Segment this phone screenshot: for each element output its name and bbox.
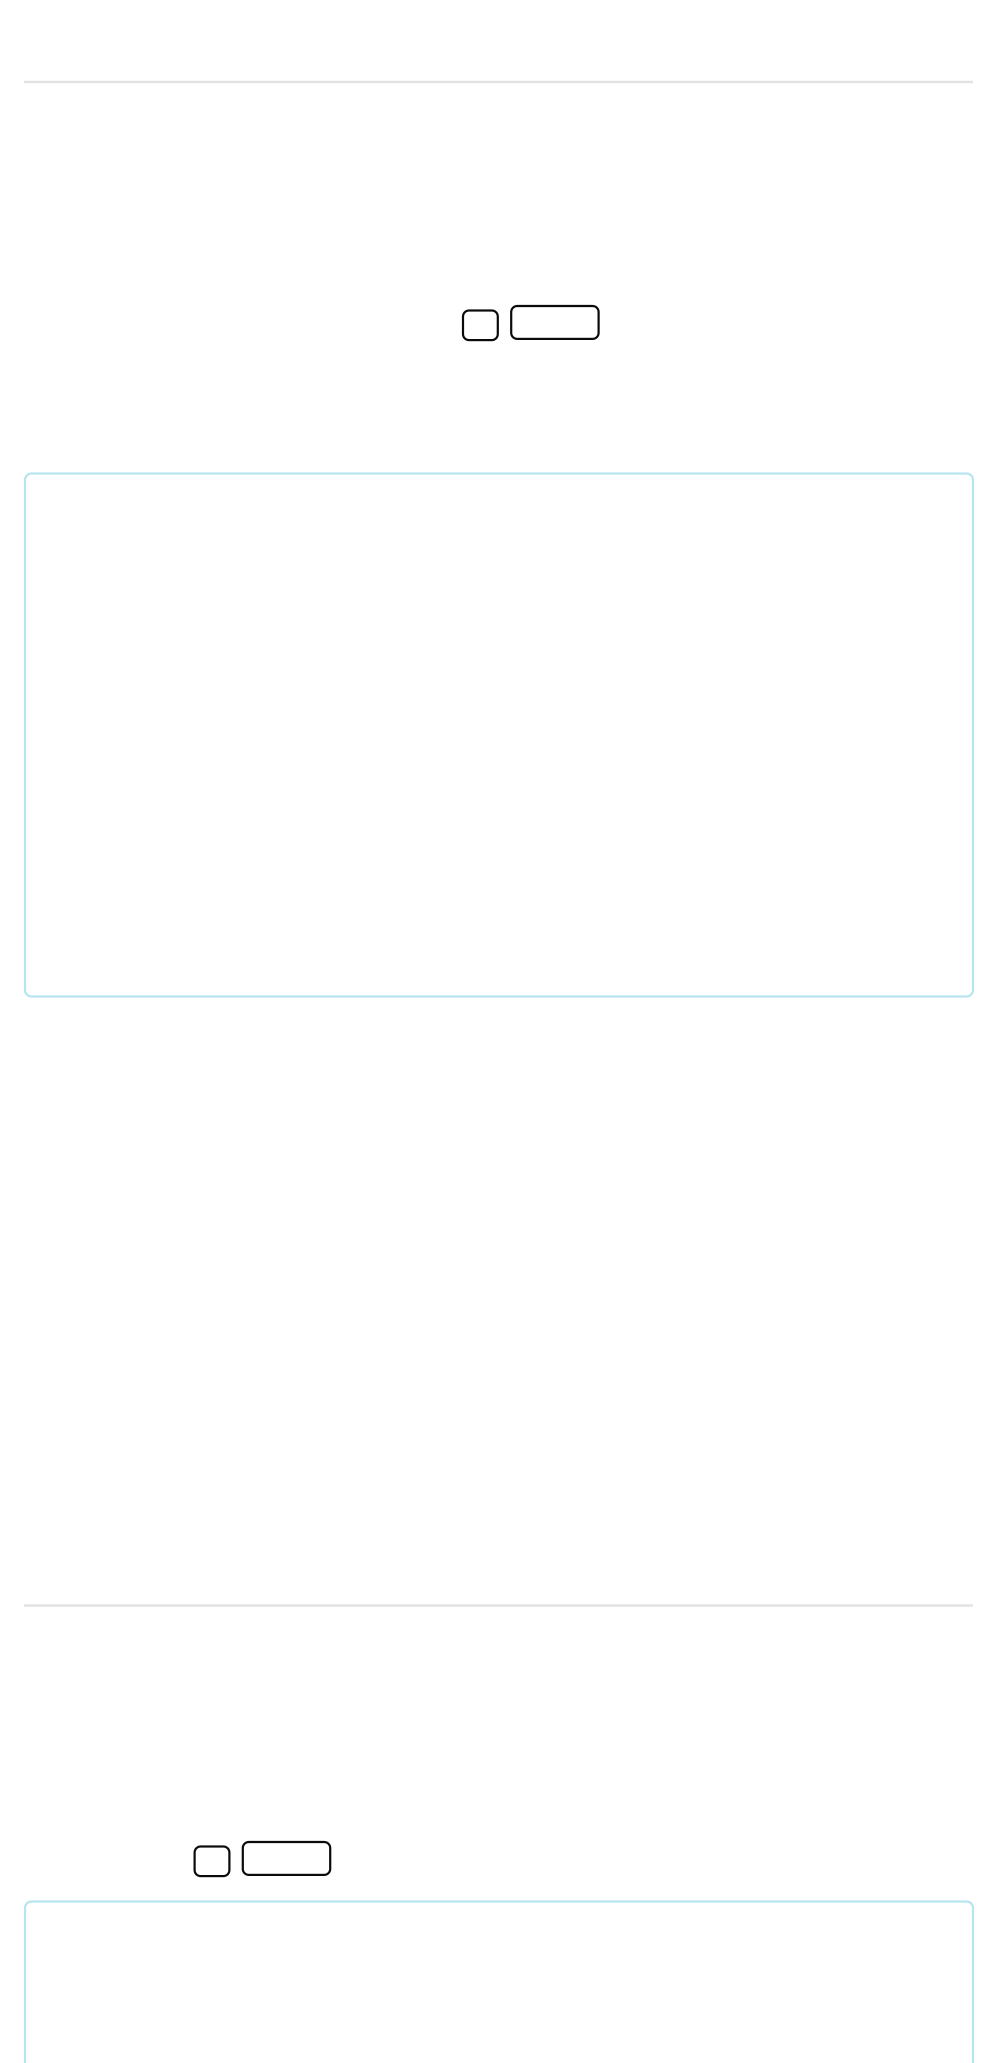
button[interactable]: Image placeholder: [193, 1840, 335, 1882]
button[interactable]: Embedded content: [25, 473, 973, 996]
button[interactable]: Image placeholder: [461, 304, 603, 346]
button[interactable]: Embedded content: [25, 1901, 973, 2063]
